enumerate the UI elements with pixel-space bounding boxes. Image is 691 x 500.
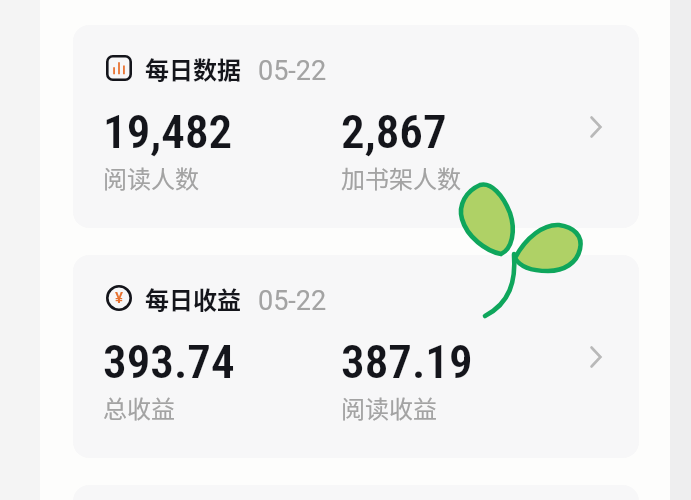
staticText: 393.74 xyxy=(103,334,235,389)
staticText: 05-22 xyxy=(258,55,327,87)
button[interactable]: 每日数据 xyxy=(73,25,639,228)
staticText: 总收益 xyxy=(103,390,175,425)
button[interactable]: 查看详情 xyxy=(578,109,614,145)
button[interactable]: 查看详情 xyxy=(578,339,614,375)
staticText: ¥ xyxy=(115,289,124,307)
staticText: 阅读人数 xyxy=(103,160,199,195)
staticText: 加书架人数 xyxy=(341,160,461,195)
staticText: 每日收益 xyxy=(145,281,241,316)
staticText: 2,867 xyxy=(341,104,447,159)
staticText: 387.19 xyxy=(341,334,473,389)
staticText: 05-22 xyxy=(258,285,327,317)
button[interactable]: ¥ xyxy=(73,255,639,458)
staticText: 19,482 xyxy=(103,104,233,159)
staticText: 阅读收益 xyxy=(341,390,437,425)
staticText: 每日数据 xyxy=(145,51,241,86)
